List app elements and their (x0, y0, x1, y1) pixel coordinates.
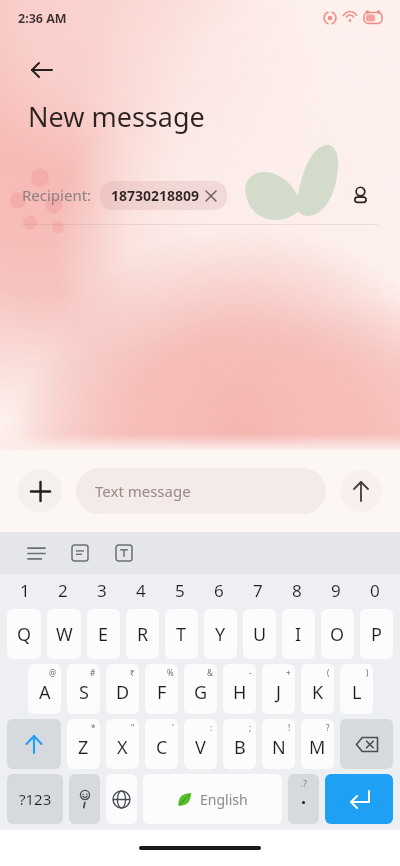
staticText: A (39, 680, 51, 705)
staticText: Q (17, 622, 32, 647)
staticText: M (309, 735, 326, 760)
staticText: L (352, 680, 362, 705)
button[interactable]: T (165, 609, 198, 659)
button[interactable]: R (126, 609, 159, 659)
staticText: * (91, 722, 96, 733)
staticText: ! (288, 722, 291, 733)
button[interactable]: Shift (7, 719, 61, 769)
staticText: ' (172, 722, 174, 733)
staticText: English (200, 790, 248, 809)
button[interactable]: U (243, 609, 276, 659)
button[interactable]: E (87, 609, 120, 659)
button[interactable]: Text settings (108, 537, 140, 569)
staticText: 5 (175, 579, 185, 602)
staticText: H (233, 680, 247, 705)
staticText: ? (326, 722, 330, 733)
staticText: U (253, 622, 267, 647)
staticText: Y (215, 622, 226, 647)
button[interactable]: Text message (76, 468, 326, 514)
staticText: Z (78, 735, 89, 760)
staticText: + (286, 667, 291, 678)
staticText: O (330, 622, 345, 647)
button[interactable]: ' (145, 719, 178, 769)
button[interactable]: % (145, 664, 178, 714)
button[interactable]: ? (301, 719, 334, 769)
staticText: K (312, 680, 324, 705)
button[interactable]: Choose contact (342, 177, 378, 213)
button[interactable]: Send (340, 470, 382, 512)
staticText: ( (327, 667, 330, 678)
staticText: 9 (331, 579, 341, 602)
staticText: 18730218809 (111, 186, 200, 205)
staticText: 2 (58, 579, 68, 602)
button[interactable]: " (106, 719, 139, 769)
button[interactable]: Y (204, 609, 237, 659)
button[interactable]: Q (7, 609, 41, 659)
staticText: 4 (136, 579, 146, 602)
button[interactable]: Menu (20, 537, 52, 569)
button[interactable]: 7 (238, 574, 277, 606)
button[interactable]: ?123 (7, 774, 63, 824)
staticText: D (116, 680, 130, 705)
button[interactable]: Emoji and comma (69, 774, 100, 824)
button[interactable]: Back (20, 48, 64, 92)
button[interactable]: 5 (160, 574, 199, 606)
button[interactable]: @ (28, 664, 61, 714)
button[interactable]: 4 (121, 574, 160, 606)
staticText: 2:36 AM (18, 10, 67, 27)
staticText: 0 (370, 579, 380, 602)
button[interactable]: ( (301, 664, 334, 714)
button[interactable]: I (282, 609, 315, 659)
button[interactable]: Add attachment (18, 469, 62, 513)
button[interactable]: ; (223, 719, 256, 769)
button[interactable]: Change language (106, 774, 137, 824)
button[interactable]: + (262, 664, 295, 714)
staticText: & (207, 667, 213, 678)
button[interactable]: * (67, 719, 100, 769)
button[interactable]: W (47, 609, 81, 659)
button[interactable]: : (184, 719, 217, 769)
staticText: Text message (95, 481, 191, 501)
staticText: 3 (97, 579, 107, 602)
staticText: E (98, 622, 109, 647)
staticText: B (234, 735, 246, 760)
button[interactable]: Clipboard (64, 537, 96, 569)
staticText: N (272, 735, 286, 760)
staticText: New message (28, 98, 205, 135)
button[interactable]: ) (340, 664, 373, 714)
button[interactable]: Period (288, 774, 319, 824)
staticText: F (157, 680, 167, 705)
staticText: R (137, 622, 149, 647)
staticText: ₹ (130, 667, 135, 678)
button[interactable]: & (184, 664, 217, 714)
staticText: @ (49, 667, 57, 678)
button[interactable]: English (143, 774, 282, 824)
button[interactable]: 9 (316, 574, 355, 606)
staticText: ) (366, 667, 369, 678)
staticText: : (210, 722, 213, 733)
button[interactable]: ₹ (106, 664, 139, 714)
button[interactable]: Backspace (340, 719, 393, 769)
staticText: W (56, 622, 73, 647)
button[interactable]: 3 (82, 574, 121, 606)
button[interactable]: 2 (44, 574, 82, 606)
staticText: 8 (292, 579, 302, 602)
button[interactable]: 8 (277, 574, 316, 606)
button[interactable]: O (321, 609, 354, 659)
button[interactable]: - (223, 664, 256, 714)
button[interactable]: Enter (325, 774, 393, 824)
button[interactable]: 1 (6, 574, 44, 606)
staticText: 1 (20, 579, 30, 602)
button[interactable]: 18730218809 (100, 181, 227, 210)
staticText: .? (301, 778, 307, 789)
staticText: P (371, 622, 382, 647)
button[interactable]: 6 (199, 574, 238, 606)
staticText: X (117, 735, 128, 760)
button[interactable]: ! (262, 719, 295, 769)
staticText: % (167, 667, 174, 678)
button[interactable]: 0 (355, 574, 394, 606)
staticText: T (176, 622, 187, 647)
button[interactable]: P (360, 609, 393, 659)
staticText: C (156, 735, 168, 760)
button[interactable]: # (67, 664, 100, 714)
